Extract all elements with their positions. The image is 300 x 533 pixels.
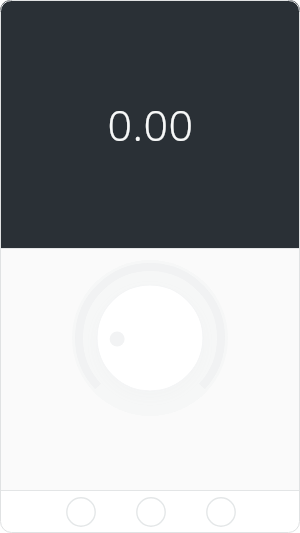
button[interactable]: Volume knob	[65, 249, 235, 419]
staticText: 0.00	[107, 95, 194, 154]
button[interactable]: 0.00	[0, 0, 300, 248]
button[interactable]: Recents	[206, 497, 236, 527]
button[interactable]: Home	[136, 497, 166, 527]
button[interactable]: Back	[66, 497, 96, 527]
